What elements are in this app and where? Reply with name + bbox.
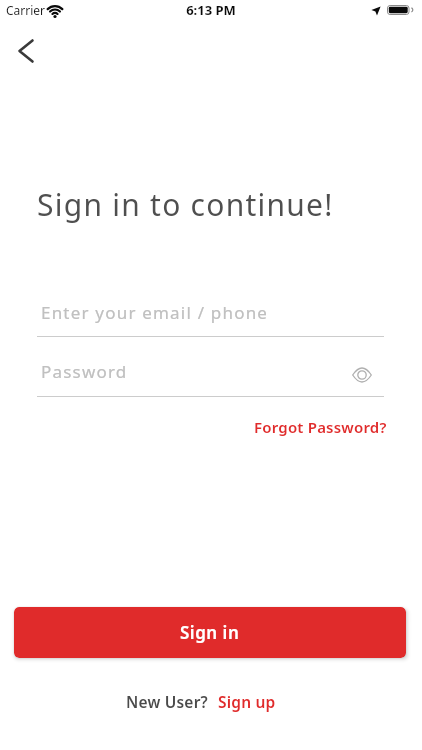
staticText: New User? (126, 691, 208, 712)
staticText: Password (41, 360, 128, 383)
button[interactable] (352, 367, 372, 383)
staticText: Sign in to continue! (37, 184, 334, 225)
staticText: Enter your email / phone (41, 301, 269, 324)
staticText: Carrier (6, 2, 46, 18)
button[interactable] (14, 37, 42, 65)
button[interactable]: Forgot Password? (254, 417, 387, 437)
button[interactable]: Sign up (218, 691, 276, 712)
button[interactable]: Sign in (14, 607, 406, 658)
staticText: Sign in (180, 621, 240, 644)
staticText: 6:13 PM (0, 1, 422, 19)
